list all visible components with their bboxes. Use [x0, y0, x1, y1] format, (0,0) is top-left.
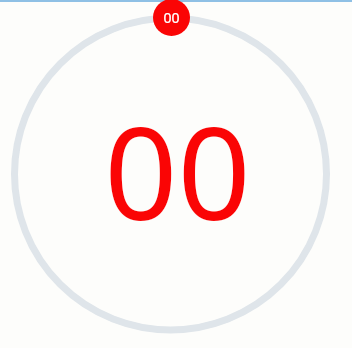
button[interactable]: Lap counter marker	[153, 0, 190, 36]
button[interactable]: 00	[0, 0, 352, 348]
staticText: 00	[104, 83, 251, 257]
staticText: 00	[163, 8, 180, 27]
